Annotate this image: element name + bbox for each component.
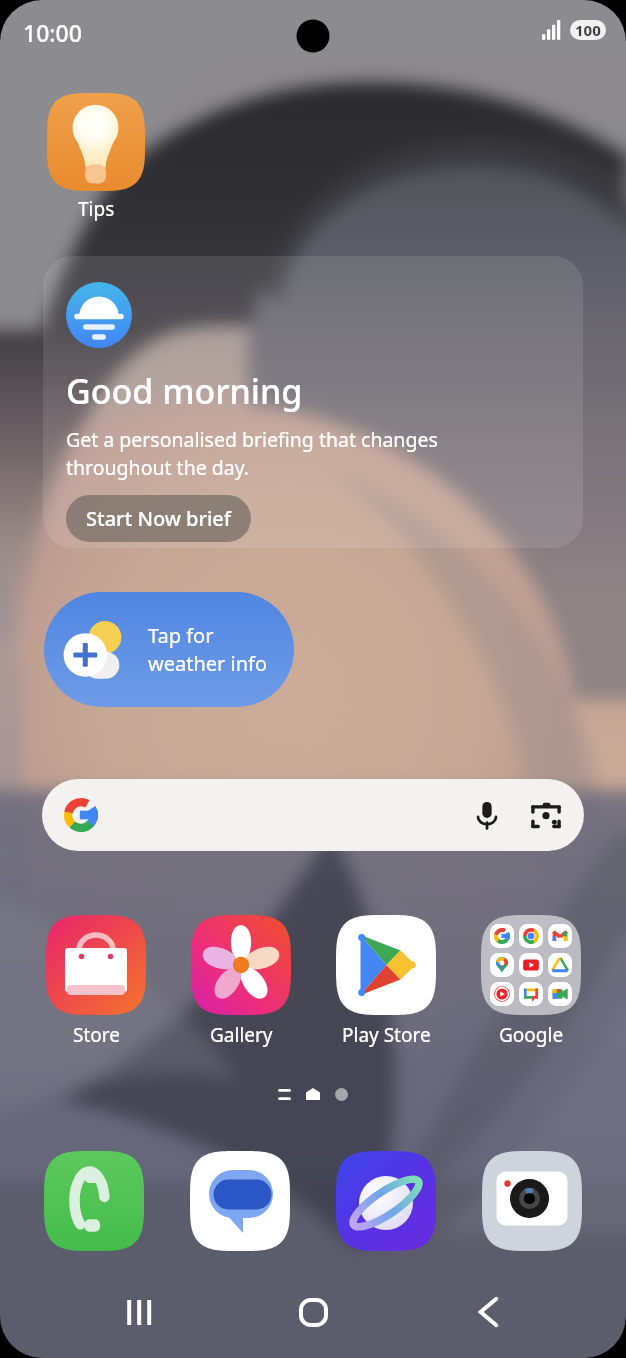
button[interactable]: Messages	[190, 1151, 290, 1251]
staticText: Good morning	[66, 368, 303, 414]
staticText: 100	[575, 20, 601, 40]
button[interactable]: Play Store	[314, 915, 458, 1048]
staticText: Gallery	[210, 1022, 273, 1048]
button[interactable]: Google Search	[42, 779, 584, 851]
other: Google Search	[64, 798, 98, 832]
staticText: Start Now brief	[86, 505, 231, 532]
staticText: Play Store	[342, 1022, 431, 1048]
staticText: Get a personalised briefing that changes…	[66, 426, 438, 481]
button[interactable]: Voice search	[471, 799, 503, 831]
button[interactable]: Tap for weather info	[44, 592, 294, 707]
staticText: Tips	[78, 196, 115, 222]
button[interactable]: Store	[24, 915, 168, 1048]
staticText: Tap for weather info	[148, 622, 268, 677]
button[interactable]: Internet	[336, 1151, 436, 1251]
staticText: 10:00	[23, 17, 82, 48]
button[interactable]: Home page	[291, 1079, 335, 1109]
button[interactable]: Phone	[44, 1151, 144, 1251]
button[interactable]: Gallery	[169, 915, 313, 1048]
button[interactable]: Apps page	[262, 1079, 306, 1109]
button[interactable]: Third page	[319, 1079, 363, 1109]
button[interactable]: Start Now brief	[66, 495, 251, 542]
button[interactable]: Google Lens	[529, 798, 563, 832]
staticText: Store	[73, 1022, 120, 1048]
button[interactable]: Back	[457, 1280, 521, 1344]
button[interactable]: Good morning	[43, 256, 583, 548]
button[interactable]: Google	[459, 915, 603, 1048]
button[interactable]: Tips	[47, 93, 145, 222]
staticText: Google	[499, 1022, 564, 1048]
button[interactable]: Camera	[482, 1151, 582, 1251]
button[interactable]: Recents	[108, 1280, 172, 1344]
button[interactable]: Home	[281, 1280, 345, 1344]
